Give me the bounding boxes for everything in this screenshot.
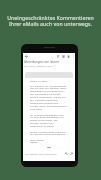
button[interactable]: Antworten [64,151,69,156]
staticText: Im Großen und Ganzen sehe ich eine gute … [30,113,67,128]
staticText: Anmerkungen zum letzten Gesprächstermin [24,60,76,64]
staticText: Uneingeschränktes Kommentieren Ihrer eMa… [3,14,98,28]
staticText: Auf diese E-Mail antworten [25,152,57,155]
button[interactable]: Markieren [56,54,61,59]
staticText: Meine Anmerkungen habe ich im Anhang zus… [30,130,67,136]
button[interactable]: Archivieren [61,54,66,59]
button[interactable]: Mehr Optionen [71,54,76,59]
staticText: Viele Grüße Daniel [30,138,44,144]
button[interactable]: Löschen [66,54,71,59]
staticText: von Buro, Heinrich 12:34 [24,64,53,67]
button[interactable]: Zurück [24,54,29,59]
staticText: der Entwurf zur Überarbeitung hat mir se… [30,84,67,111]
button[interactable]: Weiterleiten [69,151,74,156]
staticText: Guten Morgen, [30,79,48,82]
